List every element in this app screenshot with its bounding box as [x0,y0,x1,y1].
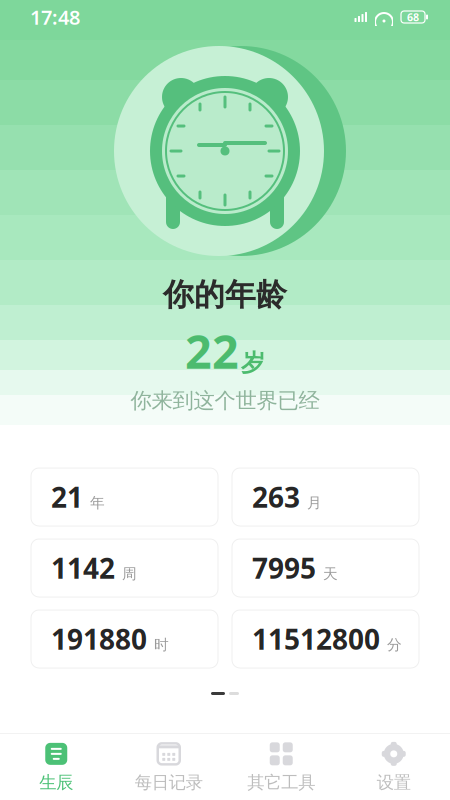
staticText: 生辰 [39,772,73,793]
staticText: 你来到这个世界已经 [130,388,319,414]
button[interactable]: 设置 [337,734,450,800]
button[interactable]: 1142 [31,539,218,597]
staticText: 周 [122,565,137,583]
staticText: 你的年龄 [163,276,287,314]
staticText: 其它工具 [247,772,315,793]
button[interactable]: 263 [232,468,419,526]
staticText: 天 [323,565,338,583]
staticText: 263 [252,478,300,516]
staticText: 月 [307,494,322,512]
button[interactable]: 21 [31,468,218,526]
staticText: 设置 [377,772,411,793]
staticText: 22 [185,320,239,382]
staticText: 21 [51,478,83,516]
button[interactable]: 11512800 [232,610,419,668]
button[interactable]: 生辰 [0,734,112,800]
staticText: 年 [90,494,105,512]
staticText: 11512800 [252,620,380,658]
button[interactable]: 191880 [31,610,218,668]
staticText: 时 [154,636,169,654]
staticText: 68 [407,10,419,24]
staticText: 每日记录 [135,772,203,793]
button[interactable]: 每日记录 [112,734,225,800]
staticText: 191880 [51,620,147,658]
button[interactable]: 其它工具 [225,734,337,800]
staticText: 17:48 [30,4,80,30]
staticText: 分 [387,636,402,654]
button[interactable]: 7995 [232,539,419,597]
staticText: 岁 [241,348,265,378]
staticText: 1142 [51,549,115,587]
staticText: 7995 [252,549,316,587]
